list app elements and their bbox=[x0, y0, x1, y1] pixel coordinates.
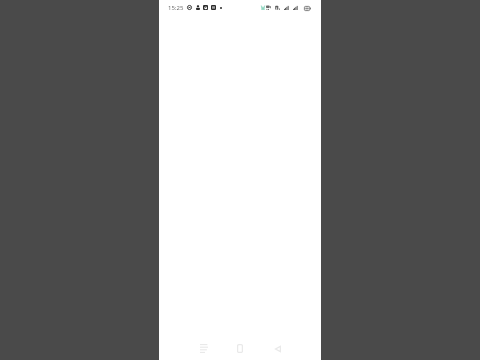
staticText: 15:25 bbox=[168, 4, 184, 12]
button[interactable]: Home bbox=[228, 337, 252, 359]
button[interactable]: Back bbox=[266, 339, 290, 358]
button[interactable]: Recent apps bbox=[192, 337, 216, 359]
